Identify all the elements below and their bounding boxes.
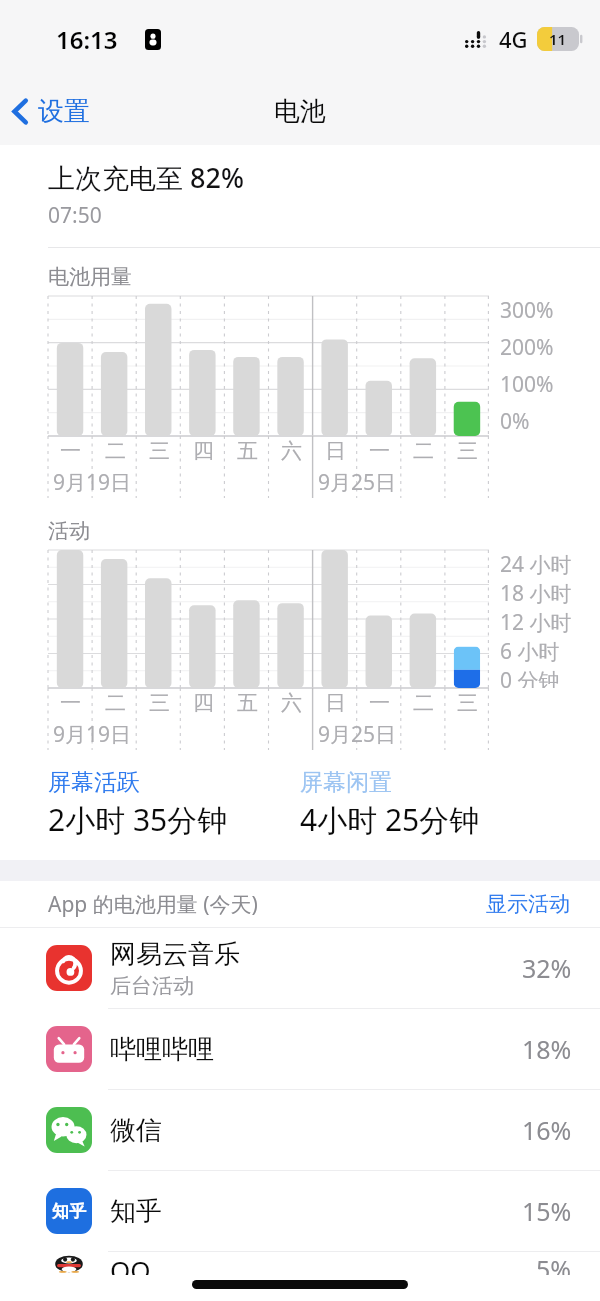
staticText: 24 小时 [500, 550, 572, 579]
staticText: 上次充电至 82% [48, 159, 244, 196]
button[interactable]: Back [0, 87, 102, 136]
staticText: 一 [60, 438, 81, 464]
staticText: 16% [522, 1113, 572, 1147]
staticText: 16:13 [56, 23, 118, 56]
staticText: 电池用量 [48, 264, 132, 290]
staticText: 二 [105, 690, 126, 716]
staticText: 4G [499, 24, 528, 54]
staticText: 六 [281, 690, 302, 716]
staticText: 9月25日 [318, 468, 397, 497]
button[interactable]: QQ [0, 1252, 600, 1275]
staticText: 12 小时 [500, 608, 572, 637]
staticText: 15% [522, 1194, 572, 1228]
staticText: 四 [193, 690, 214, 716]
button[interactable]: 哔哩哔哩 [0, 1009, 600, 1089]
staticText: 9月25日 [318, 720, 397, 749]
staticText: 一 [369, 690, 390, 716]
staticText: 32% [522, 951, 572, 985]
button[interactable]: 微信 [0, 1090, 600, 1170]
staticText: 日 [325, 438, 346, 464]
staticText: 二 [105, 438, 126, 464]
staticText: 2小时 35分钟 [48, 799, 228, 840]
staticText: 三 [149, 438, 170, 464]
staticText: 网易云音乐 [110, 938, 240, 971]
staticText: 0 分钟 [500, 666, 560, 688]
staticText: 200% [500, 333, 554, 362]
staticText: 18% [522, 1032, 572, 1066]
button[interactable]: 网易云音乐 [0, 928, 600, 1008]
staticText: 三 [457, 690, 478, 716]
staticText: 知乎 [52, 1201, 86, 1222]
staticText: 100% [500, 370, 554, 399]
staticText: 9月19日 [53, 468, 132, 497]
staticText: QQ [110, 1252, 151, 1275]
staticText: 设置 [38, 95, 90, 128]
staticText: 屏幕闲置 [300, 768, 392, 797]
staticText: 五 [237, 690, 258, 716]
staticText: 二 [413, 690, 434, 716]
staticText: 四 [193, 438, 214, 464]
staticText: 6 小时 [500, 637, 560, 666]
staticText: 0% [500, 407, 530, 436]
other: Back [13, 98, 28, 125]
staticText: 07:50 [48, 201, 102, 230]
staticText: 9月19日 [53, 720, 132, 749]
staticText: 电池 [274, 95, 326, 128]
staticText: 18 小时 [500, 579, 572, 608]
button[interactable]: 显示活动 [482, 887, 574, 921]
staticText: 哔哩哔哩 [110, 1033, 214, 1066]
staticText: 知乎 [110, 1195, 162, 1228]
staticText: 300% [500, 296, 554, 325]
staticText: 日 [325, 690, 346, 716]
button[interactable]: 知乎 [0, 1171, 600, 1251]
staticText: 微信 [110, 1114, 162, 1147]
staticText: 5% [536, 1252, 572, 1275]
staticText: 11 [549, 29, 567, 49]
staticText: 活动 [48, 518, 90, 544]
staticText: 三 [457, 438, 478, 464]
staticText: 4小时 25分钟 [300, 799, 480, 840]
staticText: 三 [149, 690, 170, 716]
staticText: 五 [237, 438, 258, 464]
staticText: App 的电池用量 (今天) [48, 890, 258, 919]
staticText: 显示活动 [486, 891, 570, 917]
staticText: 一 [369, 438, 390, 464]
staticText: 屏幕活跃 [48, 768, 140, 797]
staticText: 后台活动 [110, 973, 194, 999]
staticText: 二 [413, 438, 434, 464]
staticText: 六 [281, 438, 302, 464]
staticText: 一 [60, 690, 81, 716]
